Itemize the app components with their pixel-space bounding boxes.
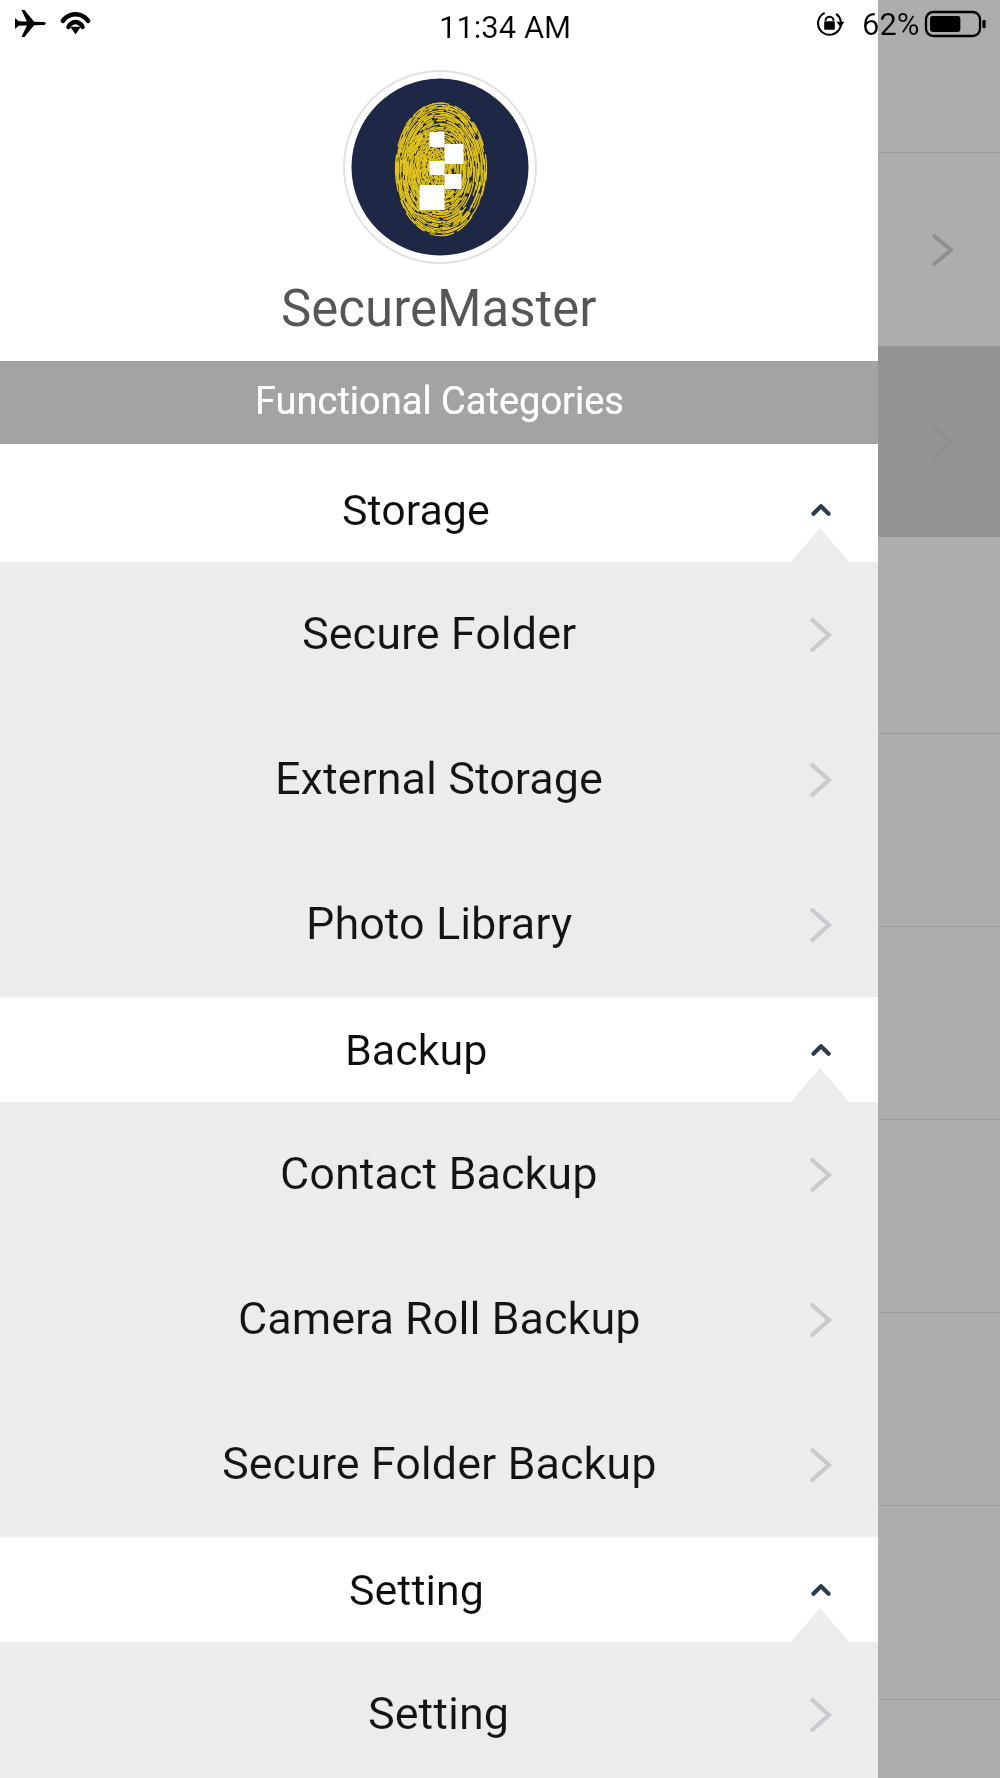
button[interactable]: Storage xyxy=(0,444,878,562)
staticText: Setting xyxy=(349,1565,484,1615)
staticText: Secure Folder xyxy=(302,607,577,660)
button[interactable]: Collapse Backup xyxy=(789,1018,853,1082)
button[interactable]: Open Photo Library xyxy=(788,893,852,957)
staticText: Functional Categories xyxy=(255,379,624,424)
button[interactable]: Backup xyxy=(0,997,878,1102)
button[interactable]: Open Camera Roll Backup xyxy=(788,1288,852,1352)
button[interactable]: Photo Library xyxy=(0,852,878,997)
staticText: 11:34 AM xyxy=(439,9,572,45)
button[interactable] xyxy=(0,1120,1000,1313)
button[interactable]: Open Secure Folder Backup xyxy=(788,1433,852,1497)
button[interactable]: Setting xyxy=(0,1537,878,1642)
button[interactable] xyxy=(0,734,1000,927)
button[interactable]: Camera Roll Backup xyxy=(0,1247,878,1392)
button[interactable]: Open Contact Backup xyxy=(788,1143,852,1207)
button[interactable]: External Storage xyxy=(0,707,878,852)
other: Wi-Fi xyxy=(60,12,91,36)
button[interactable] xyxy=(0,153,1000,346)
button[interactable] xyxy=(0,537,1000,734)
staticText: Photo Library xyxy=(306,897,573,950)
button[interactable]: Setting xyxy=(0,1642,878,1778)
staticText: External Storage xyxy=(275,752,603,805)
button[interactable] xyxy=(0,1313,1000,1506)
staticText: Camera Roll Backup xyxy=(238,1292,641,1345)
button[interactable]: Contact Backup xyxy=(0,1102,878,1247)
button[interactable]: Open External Storage xyxy=(788,748,852,812)
button[interactable]: Open Secure Folder xyxy=(788,603,852,667)
staticText: SecureMaster xyxy=(281,279,597,339)
staticText: Secure Folder Backup xyxy=(222,1437,657,1490)
button[interactable]: Secure Folder Backup xyxy=(0,1392,878,1537)
button[interactable] xyxy=(0,0,1000,153)
staticText: Setting xyxy=(368,1687,510,1740)
button[interactable]: Open Setting xyxy=(788,1683,852,1747)
button[interactable]: Collapse Setting xyxy=(789,1558,853,1622)
other: Rotation lock xyxy=(816,10,846,37)
staticText: Contact Backup xyxy=(280,1147,598,1200)
button[interactable] xyxy=(0,927,1000,1120)
other: Airplane mode xyxy=(15,10,46,37)
staticText: 62% xyxy=(862,6,920,42)
button[interactable] xyxy=(0,1506,1000,1700)
button[interactable]: Secure Folder xyxy=(0,562,878,707)
button[interactable] xyxy=(0,346,1000,537)
button[interactable]: Collapse Storage xyxy=(789,478,853,542)
button[interactable] xyxy=(0,1700,1000,1778)
staticText: Backup xyxy=(345,1025,488,1075)
staticText: Storage xyxy=(342,485,490,535)
